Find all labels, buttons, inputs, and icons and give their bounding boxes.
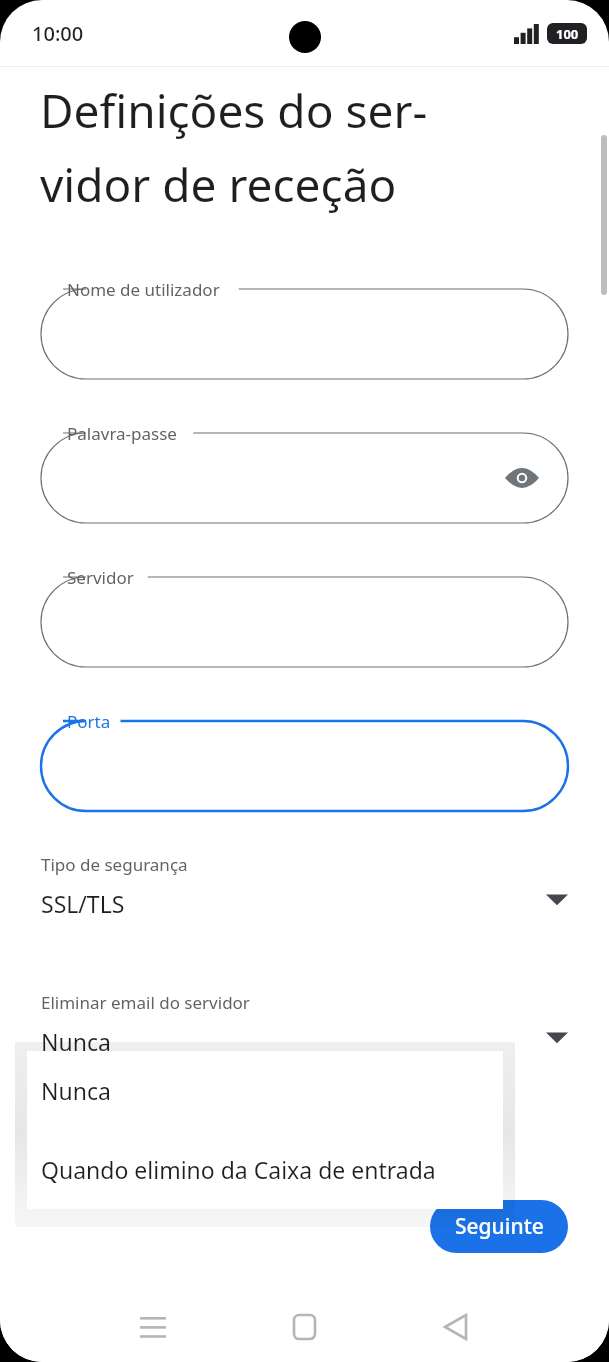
staticText: Nunca (41, 1075, 111, 1106)
button[interactable]: Quando elimino da Caixa de entrada (27, 1130, 503, 1209)
button[interactable]: Porta (41, 706, 568, 811)
staticText: 100 (556, 25, 579, 43)
staticText: Tipo de segurança (41, 853, 188, 876)
staticText: Definições do ser- vidor de receção (40, 79, 428, 216)
staticText: SSL/TLS (41, 888, 125, 919)
button[interactable]: Tipo de segurança (0, 841, 609, 941)
button[interactable]: Seguinte (430, 1200, 568, 1253)
button[interactable]: Servidor (41, 562, 568, 667)
staticText: Palavra-passe (67, 422, 177, 445)
button[interactable]: Palavra-passe (41, 418, 568, 523)
button[interactable]: Voltar (422, 1294, 488, 1360)
button[interactable]: Recentes (120, 1294, 186, 1360)
staticText: Eliminar email do servidor (41, 991, 250, 1014)
staticText: Nunca (41, 1026, 111, 1057)
staticText: Servidor (67, 566, 134, 589)
button[interactable]: Nome de utilizador (41, 274, 568, 379)
staticText: Seguinte (455, 1212, 544, 1241)
button[interactable]: Nunca (27, 1051, 503, 1130)
button[interactable]: Mostrar palavra-passe (500, 456, 544, 500)
staticText: Nome de utilizador (67, 278, 220, 301)
staticText: Quando elimino da Caixa de entrada (41, 1154, 436, 1185)
button[interactable]: Eliminar email do servidor (0, 979, 609, 1079)
button[interactable]: Início (271, 1294, 337, 1360)
staticText: 10:00 (32, 20, 84, 47)
staticText: Porta (67, 710, 111, 733)
